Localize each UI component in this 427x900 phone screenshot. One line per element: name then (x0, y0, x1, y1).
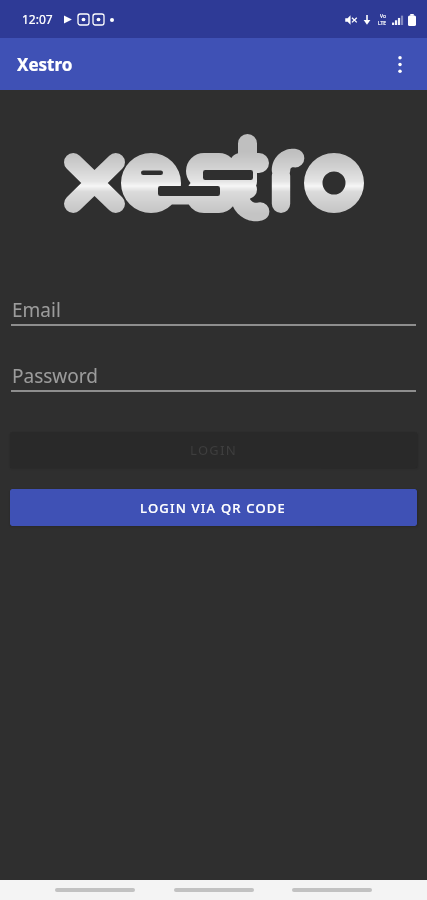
staticText: LOGIN (190, 441, 238, 459)
button[interactable]: Back (55, 888, 135, 892)
staticText: 12:07 (22, 11, 53, 27)
button[interactable]: Recents (292, 888, 372, 892)
staticText: LOGIN VIA QR CODE (140, 499, 287, 517)
staticText: Xestro (17, 53, 73, 76)
staticText: Vo (380, 13, 386, 20)
staticText: Password (12, 363, 98, 389)
button[interactable]: More options (378, 42, 422, 86)
staticText: Email (12, 297, 61, 323)
button[interactable]: Home (174, 888, 254, 892)
staticText: LTE (378, 20, 387, 26)
button[interactable]: LOGIN VIA QR CODE (10, 489, 417, 526)
